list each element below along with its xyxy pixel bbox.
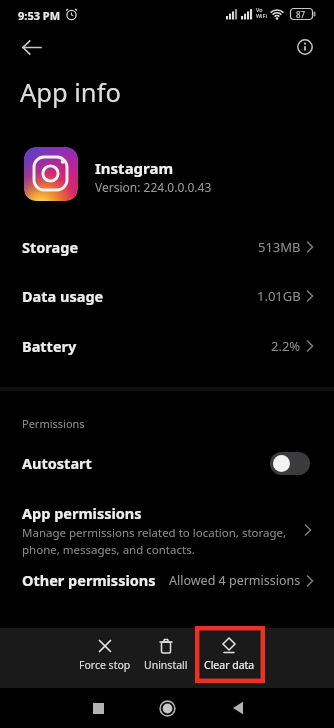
button[interactable] (289, 33, 321, 61)
staticText: Data usage (22, 286, 104, 306)
staticText: Battery (22, 336, 77, 356)
staticText: Other permissions (22, 570, 156, 590)
button[interactable] (10, 35, 50, 61)
staticText: 87 (296, 9, 306, 20)
button[interactable]: Storage (0, 222, 334, 272)
button[interactable]: Force stop (72, 628, 138, 688)
button[interactable]: Uninstall (136, 628, 196, 688)
button[interactable] (80, 692, 116, 724)
button[interactable] (220, 692, 256, 724)
staticText: Clear data (204, 658, 255, 672)
button[interactable] (24, 147, 78, 201)
staticText: Version: 224.0.0.0.43 (95, 179, 212, 195)
staticText: Manage permissions related to location, … (22, 525, 287, 557)
button[interactable]: App permissions (0, 496, 334, 564)
staticText: Storage (22, 237, 79, 257)
staticText: 513MB (258, 238, 301, 256)
button[interactable]: Autostart (0, 443, 334, 483)
staticText: Allowed 4 permissions (169, 572, 301, 589)
staticText: 1.01GB (257, 287, 301, 305)
button[interactable] (149, 692, 185, 724)
staticText: Instagram (95, 158, 174, 178)
button[interactable]: Data usage (0, 271, 334, 321)
staticText: 9:53 PM (18, 8, 61, 23)
button[interactable]: Battery (0, 321, 334, 371)
staticText: App permissions (22, 503, 142, 523)
staticText: Permissions (22, 416, 85, 431)
staticText: Uninstall (144, 658, 188, 672)
staticText: 2.2% (271, 337, 301, 355)
button[interactable]: Other permissions (0, 564, 334, 596)
staticText: Autostart (22, 453, 92, 473)
button[interactable]: Clear data (198, 628, 260, 688)
staticText: Force stop (79, 658, 131, 672)
staticText: App info (20, 75, 121, 110)
staticText: Vo WiFi (256, 6, 267, 20)
